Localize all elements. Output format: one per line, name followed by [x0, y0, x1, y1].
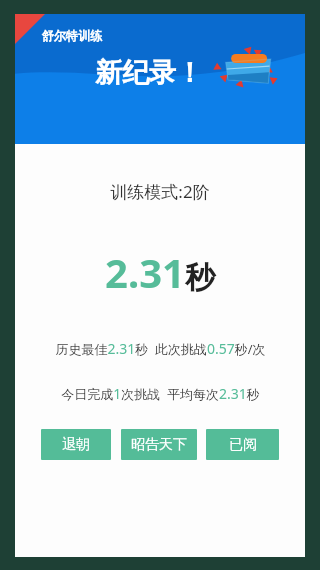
staticText: 退朝 — [62, 436, 90, 454]
staticText: 2.31秒 — [105, 245, 215, 299]
staticText: 已阅 — [229, 436, 257, 454]
staticText: 新纪录！ — [95, 56, 203, 90]
staticText: 昭告天下 — [131, 436, 187, 454]
staticText: 舒尔特训练 — [42, 28, 102, 43]
button[interactable]: 已阅 — [206, 429, 279, 460]
staticText: 历史最佳2.31秒 此次挑战0.57秒/次 — [55, 339, 266, 358]
button[interactable]: 昭告天下 — [121, 429, 197, 460]
staticText: 训练模式:2阶 — [110, 180, 210, 203]
staticText: 今日完成1次挑战 平均每次2.31秒 — [61, 384, 260, 403]
button[interactable]: 退朝 — [41, 429, 111, 460]
